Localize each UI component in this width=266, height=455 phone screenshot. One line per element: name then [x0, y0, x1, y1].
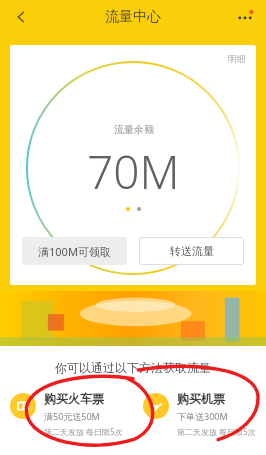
staticText: 流量余额 — [114, 123, 154, 136]
staticText: 购买火车票 — [44, 391, 104, 406]
button[interactable]: More options — [230, 2, 260, 32]
staticText: 满50元送50M — [44, 410, 100, 422]
staticText: 下单送300M — [177, 410, 228, 422]
button[interactable]: 转送流量 — [139, 237, 244, 265]
button[interactable] — [0, 291, 266, 346]
button[interactable]: 购买机票 — [133, 391, 266, 437]
staticText: 你可以通过以下方法获取流量 — [0, 360, 266, 375]
staticText: 流量中心 — [105, 8, 161, 26]
staticText: 70M — [87, 140, 180, 203]
button[interactable]: 满100M可领取 — [22, 237, 127, 265]
button[interactable]: 明细 — [228, 53, 246, 64]
staticText: 满100M可领取 — [38, 244, 111, 259]
staticText: 转送流量 — [170, 244, 214, 258]
staticText: 第二天发放 每日限5次 — [177, 426, 256, 437]
staticText: 购买机票 — [177, 391, 225, 406]
button[interactable]: 购买火车票 — [0, 391, 133, 437]
button[interactable]: Back — [6, 2, 36, 32]
staticText: 第二天发放 每日限5次 — [44, 426, 123, 437]
